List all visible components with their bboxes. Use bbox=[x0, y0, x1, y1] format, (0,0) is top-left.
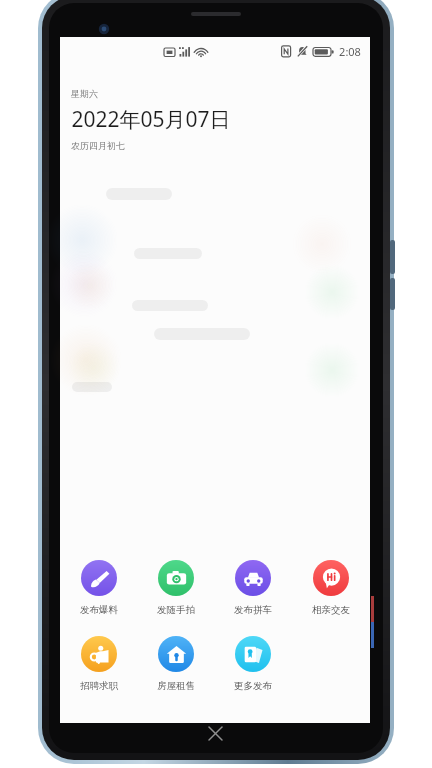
staticText: 发布拼车 bbox=[234, 604, 272, 616]
button[interactable]: 房屋租售 bbox=[137, 634, 214, 694]
staticText: 招聘求职 bbox=[80, 680, 118, 692]
button[interactable]: 关闭 bbox=[198, 716, 232, 750]
button[interactable]: 更多发布 bbox=[214, 634, 292, 694]
button[interactable]: 发布拼车 bbox=[214, 558, 292, 618]
staticText: 相亲交友 bbox=[312, 604, 350, 616]
staticText: 发布爆料 bbox=[80, 604, 118, 616]
staticText: 更多发布 bbox=[234, 680, 272, 692]
button[interactable]: 发布爆料 bbox=[60, 558, 137, 618]
staticText: 星期六 bbox=[71, 88, 98, 99]
staticText: 2:08 bbox=[339, 44, 361, 59]
staticText: 发随手拍 bbox=[157, 604, 195, 616]
staticText: 2022年05月07日 bbox=[71, 105, 231, 134]
staticText: 房屋租售 bbox=[157, 680, 195, 692]
button[interactable]: 发随手拍 bbox=[137, 558, 214, 618]
button[interactable]: 相亲交友 bbox=[292, 558, 370, 618]
staticText: 农历四月初七 bbox=[71, 140, 125, 151]
button[interactable]: 招聘求职 bbox=[60, 634, 137, 694]
